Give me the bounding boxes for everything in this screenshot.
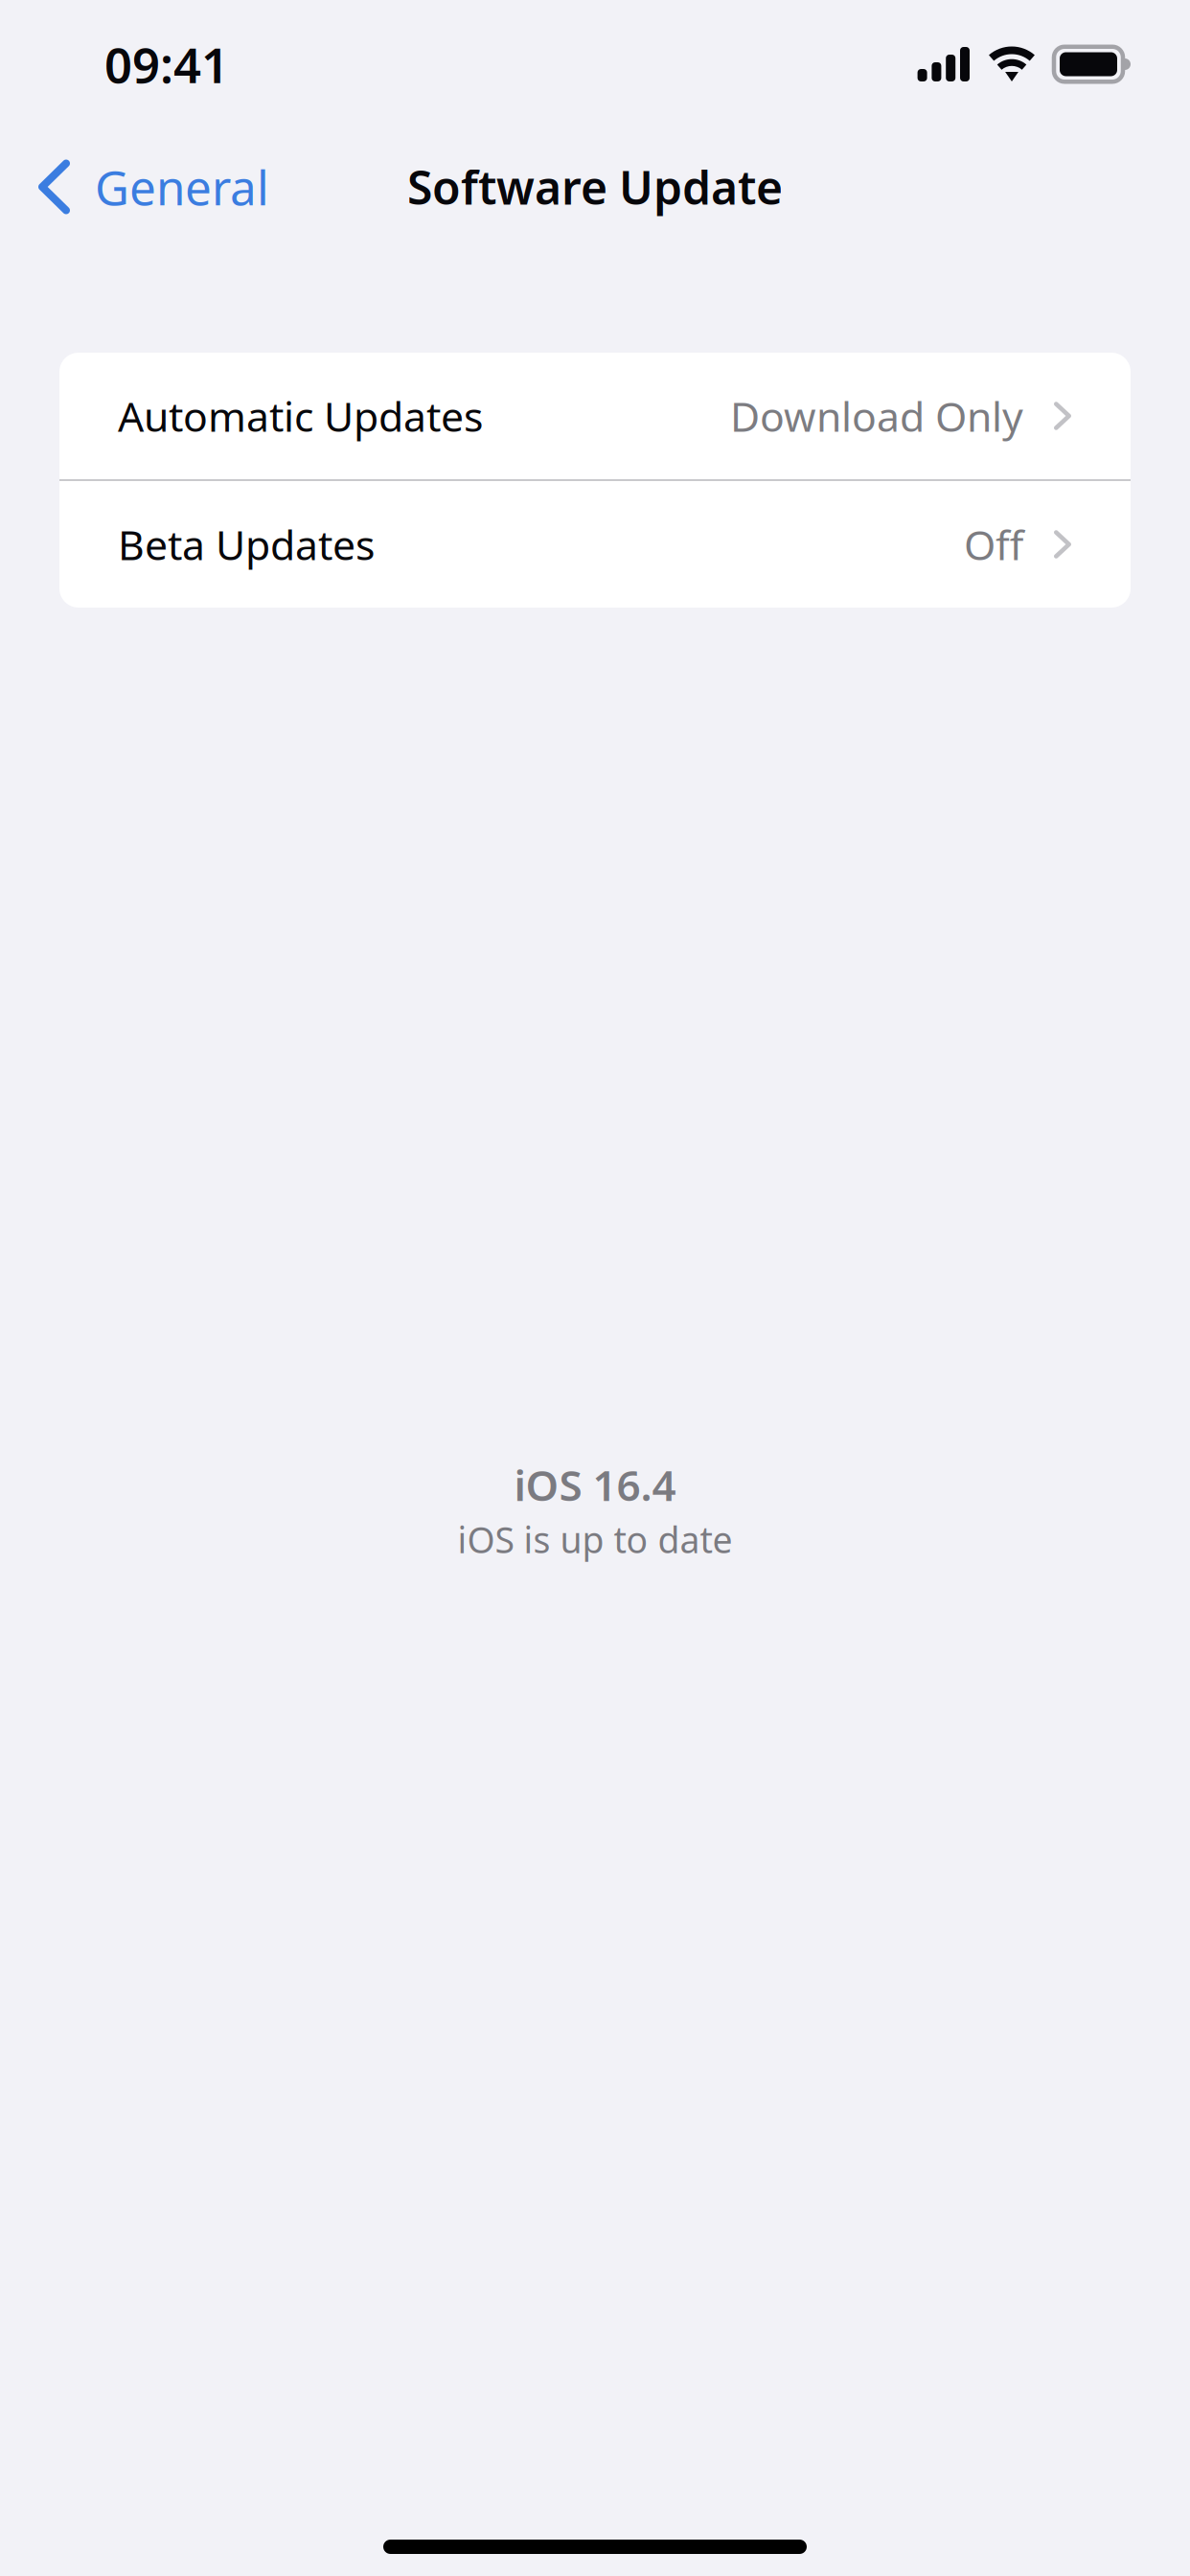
staticText: 09:41 <box>104 32 229 97</box>
button[interactable]: Automatic Updates <box>59 353 1131 479</box>
staticText: iOS is up to date <box>458 1516 732 1563</box>
staticText: Off <box>964 517 1023 572</box>
staticText: iOS 16.4 <box>514 1457 676 1513</box>
button[interactable]: Beta Updates <box>59 481 1131 608</box>
staticText: General <box>95 155 269 218</box>
staticText: Download Only <box>730 389 1023 443</box>
staticText: Beta Updates <box>118 517 375 572</box>
button[interactable]: General <box>0 142 269 232</box>
staticText: Software Update <box>407 156 783 217</box>
staticText: Automatic Updates <box>118 389 483 443</box>
